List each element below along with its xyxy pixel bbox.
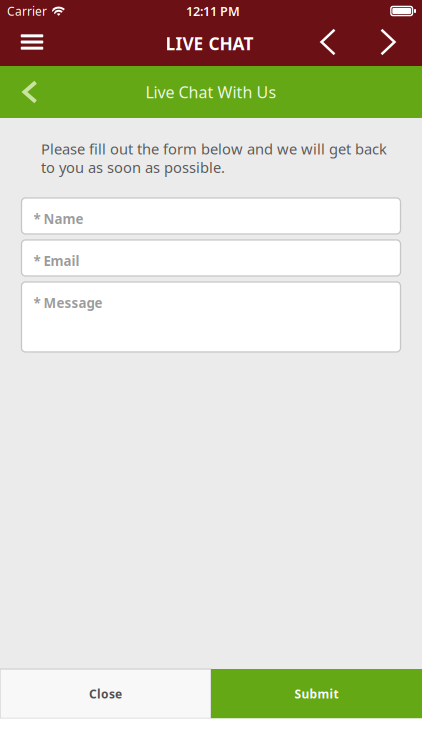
button[interactable]: Back — [306, 20, 350, 64]
button[interactable]: Submit — [211, 669, 422, 718]
staticText: * Message — [33, 294, 102, 312]
staticText: * Email — [33, 252, 79, 270]
staticText: LIVE CHAT — [165, 32, 253, 55]
staticText: * Name — [33, 210, 83, 228]
staticText: Please fill out the form below and we wi… — [41, 139, 387, 177]
staticText: 12:11 PM — [186, 2, 240, 20]
staticText: Close — [89, 686, 122, 702]
staticText: Carrier — [7, 3, 47, 19]
button[interactable]: Menu — [10, 20, 54, 64]
staticText: Live Chat With Us — [145, 81, 276, 103]
staticText: Submit — [294, 686, 338, 702]
button[interactable]: Close — [0, 669, 211, 718]
button[interactable]: Forward — [366, 20, 410, 64]
button[interactable]: Back — [8, 70, 52, 114]
